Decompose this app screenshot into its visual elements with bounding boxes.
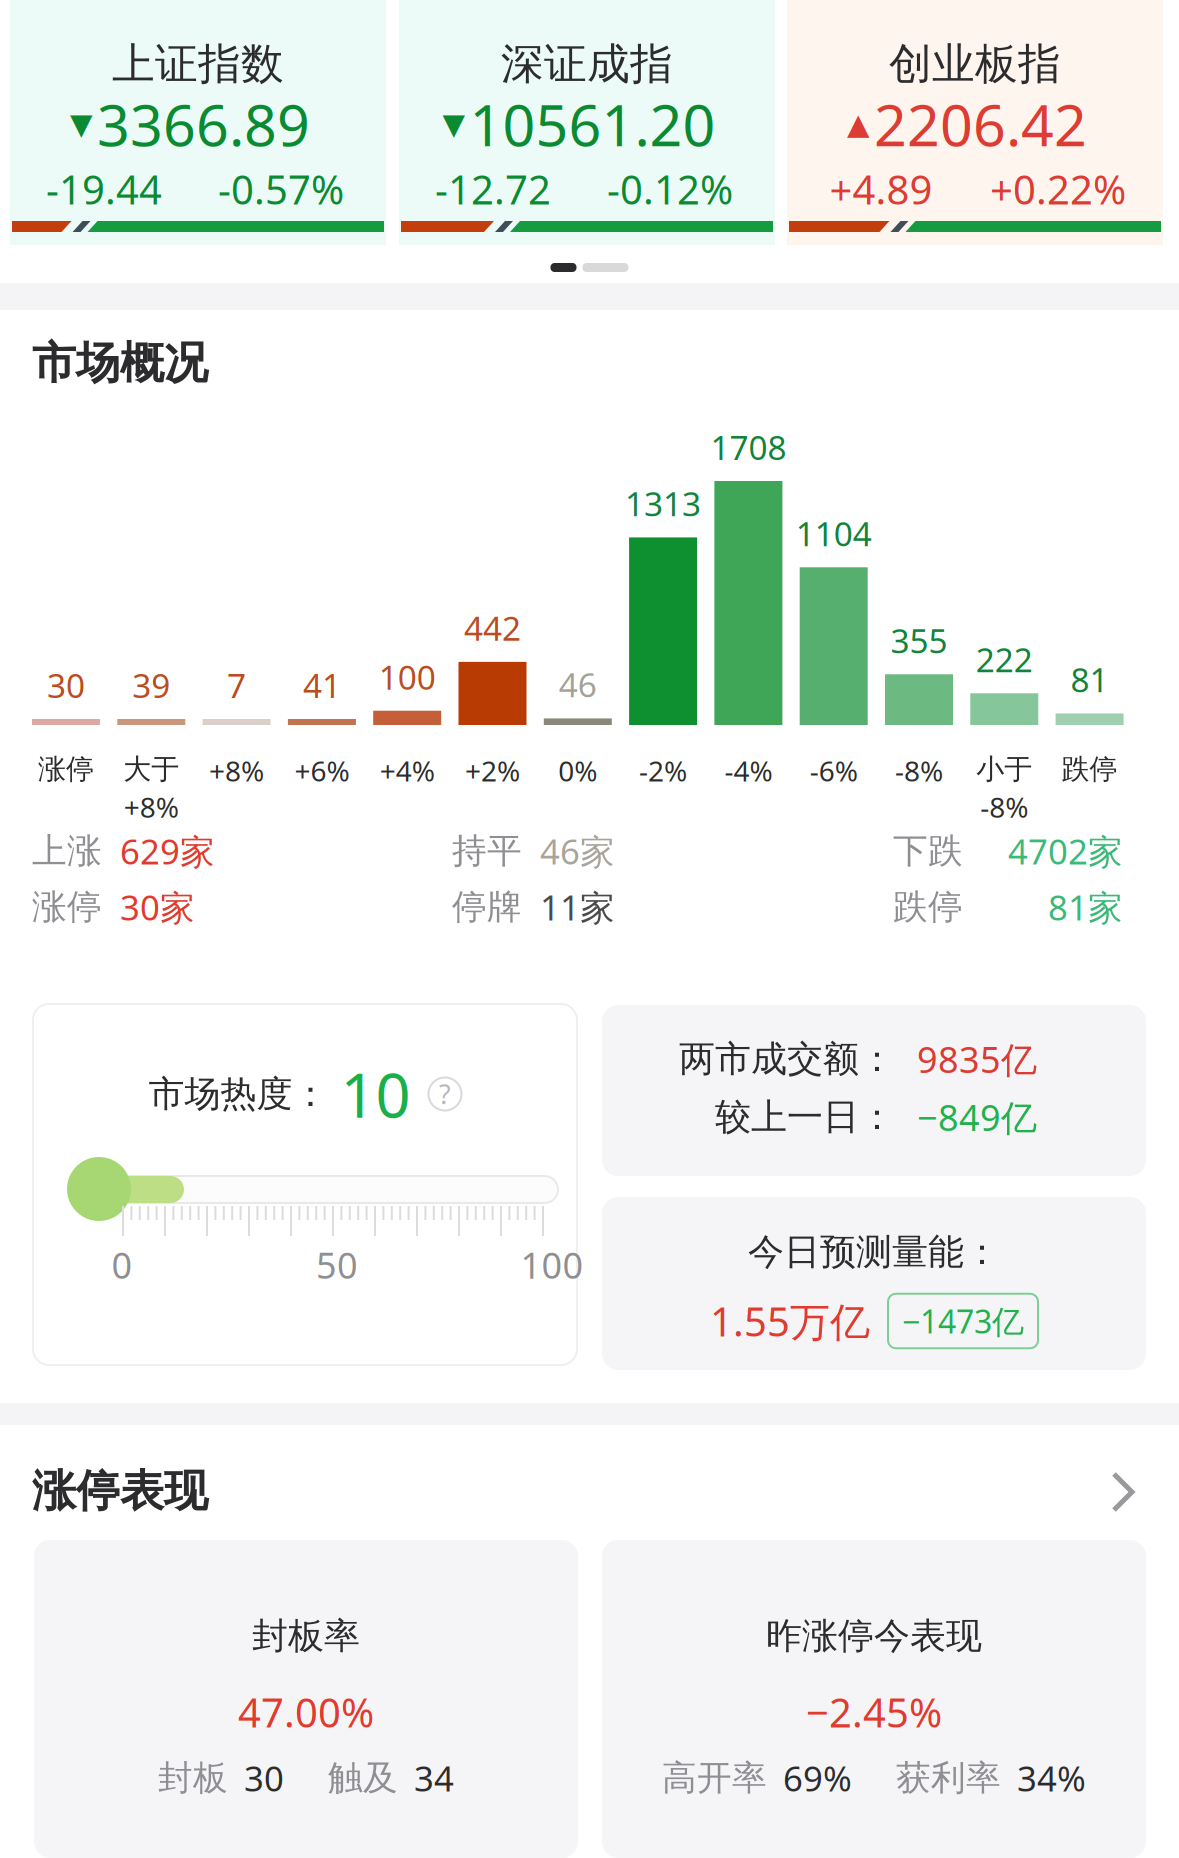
staticText: 昨涨停今表现 — [766, 1614, 982, 1658]
staticText: 30家 — [120, 884, 195, 930]
staticText: 69% — [783, 1755, 852, 1801]
staticText: +4.89 — [829, 162, 932, 215]
staticText: 1313 — [625, 481, 701, 526]
staticText: -8% — [895, 752, 943, 789]
staticText: 涨停 — [38, 752, 94, 786]
staticText: +2% — [465, 752, 520, 789]
staticText: 11家 — [540, 884, 615, 930]
staticText: 市场概况 — [32, 336, 208, 390]
staticText: 高开率 — [662, 1757, 767, 1799]
staticText: 442 — [464, 606, 521, 650]
staticText: 10 — [340, 1053, 410, 1135]
button[interactable]: 上证指数 — [10, 0, 386, 245]
staticText: 10561.20 — [469, 86, 715, 162]
staticText: ▲ — [847, 107, 870, 141]
staticText: -2% — [639, 752, 687, 789]
staticText: 81家 — [1048, 884, 1123, 930]
staticText: 3366.89 — [97, 86, 310, 162]
staticText: 30 — [244, 1755, 284, 1801]
staticText: 100 — [520, 1241, 583, 1289]
button[interactable]: 涨停表现 — [0, 1440, 1179, 1534]
button[interactable]: 创业板指 — [787, 0, 1163, 245]
staticText: 1104 — [796, 511, 872, 555]
staticText: -12.72 — [435, 162, 551, 215]
staticText: +4% — [380, 752, 435, 789]
staticText: +8% — [124, 788, 179, 826]
staticText: 7 — [227, 663, 246, 707]
staticText: 市场热度： — [148, 1072, 328, 1116]
staticText: -4% — [724, 752, 772, 789]
staticText: 停牌 — [452, 886, 522, 928]
staticText: 34 — [414, 1755, 454, 1801]
staticText: 封板率 — [252, 1614, 360, 1658]
staticText: +6% — [294, 752, 349, 789]
staticText: ? — [439, 1076, 451, 1112]
staticText: −2.45% — [806, 1685, 942, 1738]
staticText: 47.00% — [238, 1685, 374, 1738]
staticText: 持平 — [452, 830, 522, 872]
staticText: 30 — [47, 663, 85, 707]
staticText: 两市成交额： — [679, 1037, 895, 1081]
staticText: -8% — [980, 788, 1028, 826]
staticText: 222 — [976, 637, 1033, 681]
staticText: 今日预测量能： — [748, 1230, 1000, 1274]
staticText: 较上一日： — [715, 1095, 895, 1139]
staticText: 46 — [559, 662, 597, 707]
staticText: 9835亿 — [917, 1035, 1037, 1083]
staticText: 上涨 — [32, 830, 102, 872]
staticText: 触及 — [328, 1757, 398, 1799]
staticText: 1.55万亿 — [710, 1294, 870, 1347]
staticText: 跌停 — [893, 886, 963, 928]
staticText: -19.44 — [46, 162, 162, 215]
staticText: 涨停表现 — [32, 1464, 208, 1518]
staticText: ▼ — [70, 107, 93, 141]
staticText: -6% — [810, 752, 858, 789]
staticText: -0.57% — [218, 162, 344, 215]
staticText: 创业板指 — [889, 38, 1061, 90]
staticText: 46家 — [540, 828, 615, 874]
button[interactable]: 深证成指 — [399, 0, 775, 245]
staticText: 大于 — [123, 752, 179, 786]
staticText: +8% — [209, 752, 264, 789]
staticText: 0 — [111, 1241, 132, 1289]
staticText: +0.22% — [990, 162, 1126, 215]
staticText: ▼ — [442, 107, 465, 141]
staticText: 封板 — [158, 1757, 228, 1799]
staticText: 629家 — [120, 828, 215, 874]
staticText: -0.12% — [607, 162, 733, 215]
staticText: 涨停 — [32, 886, 102, 928]
staticText: 2206.42 — [874, 86, 1087, 162]
staticText: −1473亿 — [902, 1300, 1024, 1342]
button[interactable]: 昨涨停今表现 — [602, 1540, 1146, 1858]
staticText: 39 — [132, 663, 170, 707]
staticText: 深证成指 — [501, 38, 673, 90]
staticText: 4702家 — [1008, 828, 1123, 874]
button[interactable]: 封板率 — [34, 1540, 578, 1858]
staticText: 下跌 — [893, 830, 963, 872]
staticText: 跌停 — [1062, 752, 1118, 786]
staticText: 100 — [379, 655, 436, 699]
staticText: 上证指数 — [112, 38, 284, 90]
staticText: 34% — [1017, 1755, 1086, 1801]
staticText: 41 — [303, 663, 341, 707]
staticText: 1708 — [710, 425, 786, 469]
staticText: 0% — [558, 752, 597, 789]
staticText: 50 — [316, 1241, 358, 1289]
staticText: 355 — [890, 618, 947, 662]
staticText: 小于 — [976, 752, 1032, 786]
staticText: 获利率 — [896, 1757, 1001, 1799]
staticText: 81 — [1071, 657, 1109, 702]
staticText: −849亿 — [917, 1093, 1037, 1141]
